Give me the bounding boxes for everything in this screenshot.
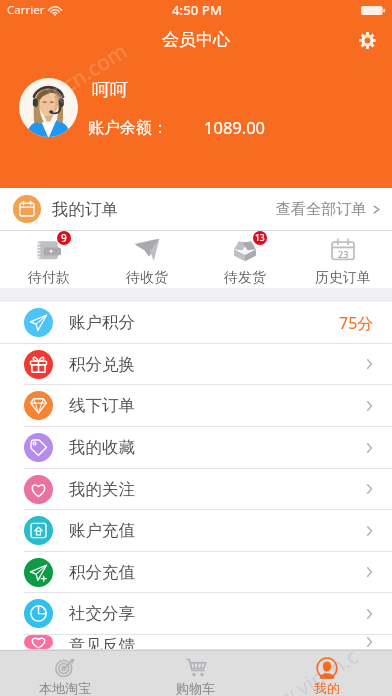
staticText: 13 (255, 232, 265, 244)
button[interactable]: Settings (349, 22, 385, 58)
button[interactable]: 线下订单 (0, 385, 392, 427)
staticText: 75分 (339, 312, 374, 334)
button[interactable]: 我的关注 (0, 469, 392, 510)
staticText: 本地淘宝 (39, 680, 91, 696)
staticText: 9 (61, 231, 67, 245)
button[interactable]: 积分充值 (0, 552, 392, 593)
staticText: 呵呵 (92, 79, 128, 102)
staticText: Carrier (7, 2, 45, 18)
staticText: 我的 (314, 680, 340, 696)
staticText: 意见反馈 (69, 635, 135, 649)
button[interactable]: 23 (294, 231, 392, 288)
staticText: 待付款 (28, 269, 70, 287)
staticText: 账户余额： (88, 118, 168, 138)
button[interactable]: 购物车 (130, 651, 261, 696)
button[interactable]: 我的 (261, 651, 392, 696)
staticText: 我的关注 (69, 479, 135, 500)
staticText: 待发货 (224, 269, 266, 287)
button[interactable]: 13 (196, 231, 294, 288)
button[interactable]: 我的订单 (0, 188, 392, 230)
staticText: 线下订单 (69, 395, 135, 416)
staticText: 积分兑换 (69, 354, 135, 375)
staticText: 历史订单 (315, 269, 371, 287)
button[interactable]: 社交分享 (0, 593, 392, 635)
staticText: 购物车 (176, 680, 215, 696)
staticText: 1089.00 (204, 116, 266, 138)
button[interactable]: 积分兑换 (0, 344, 392, 385)
staticText: 4:50 PM (172, 1, 222, 19)
staticText: 我的收藏 (69, 437, 135, 458)
staticText: ipcn.com (41, 36, 133, 109)
button[interactable]: 账户充值 (0, 510, 392, 552)
staticText: www.vipcn.c (245, 642, 364, 696)
staticText: 查看全部订单 (276, 200, 366, 219)
button[interactable]: 意见反馈 (0, 635, 392, 650)
button[interactable]: 我的收藏 (0, 427, 392, 469)
staticText: 会员中心 (162, 29, 230, 50)
staticText: 23 (338, 248, 349, 260)
button[interactable]: 9 (0, 231, 98, 288)
button[interactable]: Avatar (19, 78, 78, 137)
staticText: 社交分享 (69, 603, 135, 624)
staticText: 待收货 (126, 269, 168, 287)
staticText: 账户充值 (69, 520, 135, 541)
button[interactable]: 本地淘宝 (0, 651, 130, 696)
button[interactable]: 账户积分 (0, 302, 392, 344)
button[interactable]: 待收货 (98, 231, 196, 288)
staticText: 账户积分 (69, 312, 135, 333)
staticText: 我的订单 (52, 199, 118, 220)
staticText: 积分充值 (69, 562, 135, 583)
